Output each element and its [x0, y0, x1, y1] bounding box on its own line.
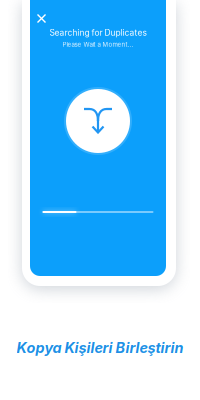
button[interactable]: Close [30, 7, 52, 29]
staticText: Please Wait a Moment... [62, 41, 133, 48]
staticText: Kopya Kişileri Birleştirin [16, 339, 183, 356]
staticText: Searching for Duplicates [49, 28, 146, 38]
